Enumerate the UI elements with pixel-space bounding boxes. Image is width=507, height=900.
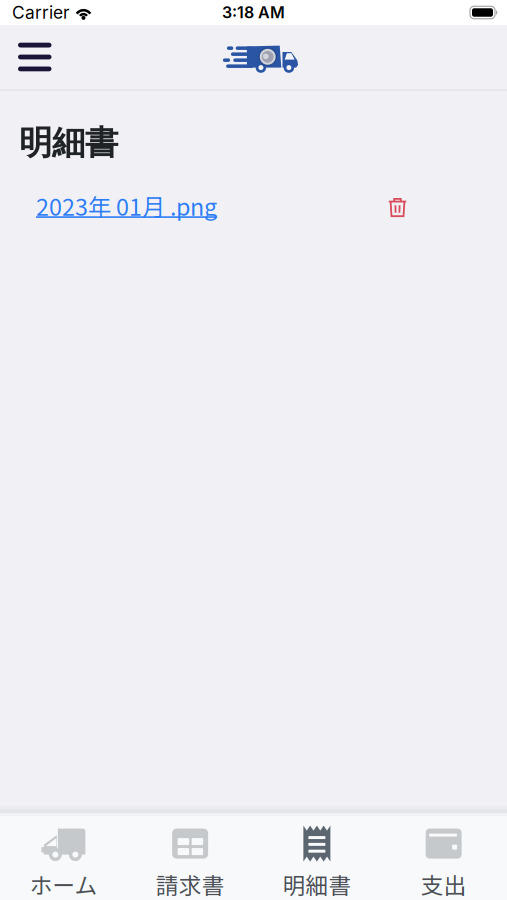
button[interactable]: ファイルを削除: [379, 185, 416, 226]
button[interactable]: ホーム: [0, 804, 127, 900]
button[interactable]: 請求書: [127, 804, 254, 900]
staticText: 3:18 AM: [222, 3, 285, 22]
button[interactable]: 2023年 01月 .png: [36, 189, 217, 222]
button[interactable]: Menu: [0, 29, 51, 85]
staticText: ホーム: [29, 868, 97, 900]
staticText: 明細書: [19, 122, 118, 164]
staticText: 請求書: [156, 868, 225, 900]
staticText: 支出: [421, 868, 467, 900]
button[interactable]: 支出: [380, 804, 507, 900]
staticText: 明細書: [282, 868, 351, 900]
staticText: Carrier: [12, 2, 70, 23]
staticText: 2023年 01月 .png: [36, 189, 217, 222]
button[interactable]: 明細書: [253, 804, 380, 900]
